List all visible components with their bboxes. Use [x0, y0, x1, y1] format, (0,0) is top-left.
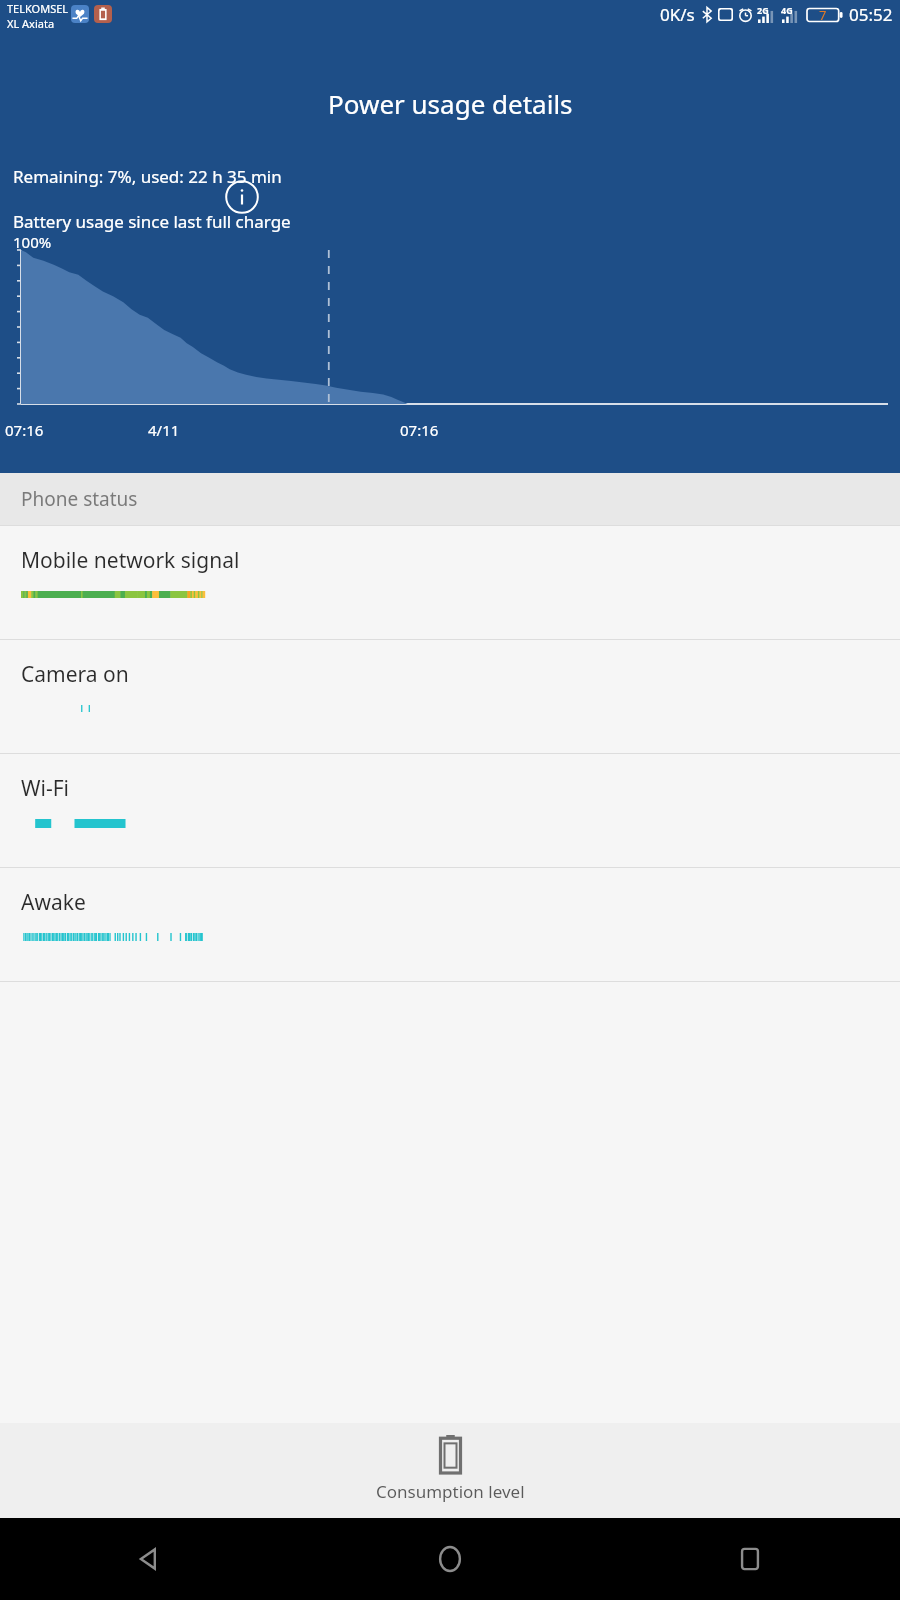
staticText: TELKOMSEL: [7, 1, 69, 16]
staticText: 100%: [13, 232, 52, 252]
staticText: Remaining: 7%, used: 22 h 35 min: [13, 165, 282, 188]
staticText: 07:16: [400, 420, 439, 440]
staticText: Battery usage since last full charge: [13, 210, 291, 233]
staticText: Awake: [21, 888, 86, 917]
staticText: Camera on: [21, 660, 129, 689]
staticText: Mobile network signal: [21, 546, 240, 575]
staticText: 07:16: [5, 420, 44, 440]
button[interactable]: Awake: [0, 868, 900, 981]
staticText: Phone status: [21, 486, 138, 512]
staticText: Consumption level: [376, 1480, 525, 1503]
button[interactable]: Back: [0, 1518, 300, 1600]
staticText: 7: [819, 6, 827, 24]
button[interactable]: Camera on: [0, 640, 900, 753]
staticText: Wi-Fi: [21, 774, 70, 803]
button[interactable]: Recent apps: [600, 1518, 900, 1600]
button[interactable]: Consumption level: [0, 1423, 900, 1518]
staticText: 4/11: [148, 420, 180, 440]
staticText: 05:52: [849, 3, 893, 26]
button[interactable]: Battery usage information: [222, 177, 262, 217]
button[interactable]: Mobile network signal: [0, 526, 900, 639]
button[interactable]: Wi-Fi: [0, 754, 900, 867]
staticText: Power usage details: [328, 86, 573, 121]
button[interactable]: Home: [300, 1518, 600, 1600]
staticText: XL Axiata: [7, 16, 55, 29]
staticText: 4G: [781, 4, 793, 16]
staticText: 0K/s: [660, 3, 695, 26]
staticText: 2G: [757, 4, 769, 16]
